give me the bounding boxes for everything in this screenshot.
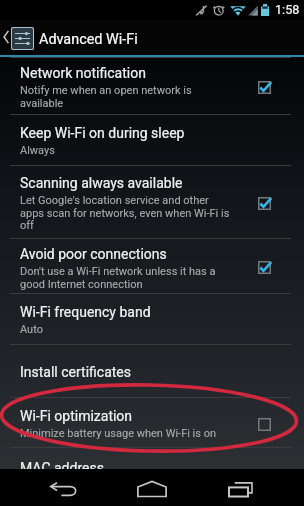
staticText: MAC address xyxy=(20,460,104,476)
staticText: Avoid poor connections xyxy=(20,246,167,262)
button[interactable]: Network notification xyxy=(0,58,304,114)
button[interactable]: Avoid poor connections xyxy=(0,239,304,294)
button[interactable]: Install certificates xyxy=(0,345,304,397)
button[interactable]: Home xyxy=(132,475,172,501)
staticText: Let Google's location service and other … xyxy=(20,194,230,231)
staticText: Notify me when an open network is availa… xyxy=(20,84,192,109)
button[interactable]: Keep Wi-Fi on during sleep xyxy=(0,115,304,165)
staticText: Auto xyxy=(20,323,43,336)
staticText: Wi-Fi optimization xyxy=(20,408,133,424)
staticText: Advanced Wi-Fi xyxy=(39,31,138,48)
staticText: Keep Wi-Fi on during sleep xyxy=(20,125,185,141)
staticText: Don't use a Wi-Fi network unless it has … xyxy=(20,265,216,290)
staticText: Install certificates xyxy=(20,364,131,380)
staticText: Scanning always available xyxy=(20,175,183,191)
button[interactable]: Scanning always available xyxy=(0,166,304,238)
button[interactable]: Navigate up xyxy=(0,26,12,48)
button[interactable]: Wi-Fi optimization xyxy=(0,398,304,448)
button[interactable]: MAC address xyxy=(0,448,304,486)
button[interactable]: Recent apps xyxy=(222,475,262,501)
staticText: Always xyxy=(20,144,55,157)
staticText: Wi-Fi frequency band xyxy=(20,304,151,320)
staticText: Network notification xyxy=(20,65,146,81)
button[interactable]: Wi-Fi frequency band xyxy=(0,294,304,344)
staticText: 1:58 xyxy=(275,2,300,17)
staticText: Minimize battery usage when Wi-Fi is on xyxy=(20,427,217,440)
button[interactable]: Back xyxy=(44,475,84,501)
